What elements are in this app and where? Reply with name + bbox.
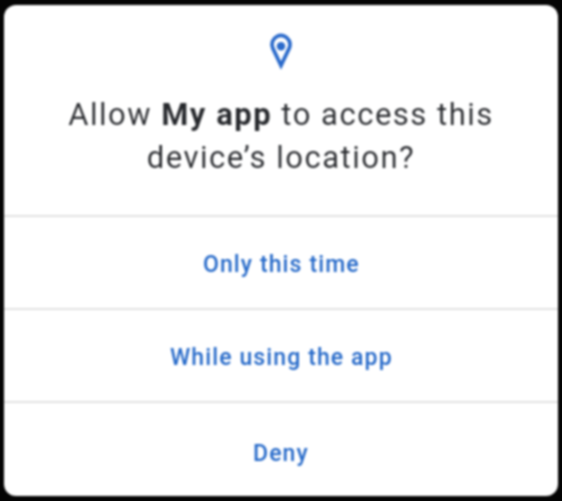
staticText: Deny — [253, 440, 309, 467]
button[interactable]: While using the app — [4, 310, 558, 401]
button[interactable]: Only this time — [4, 217, 558, 308]
staticText: Only this time — [203, 251, 360, 278]
staticText: While using the app — [170, 344, 393, 371]
button[interactable]: Deny — [4, 403, 558, 496]
staticText: Allow My app to access this device’s loc… — [4, 96, 558, 176]
